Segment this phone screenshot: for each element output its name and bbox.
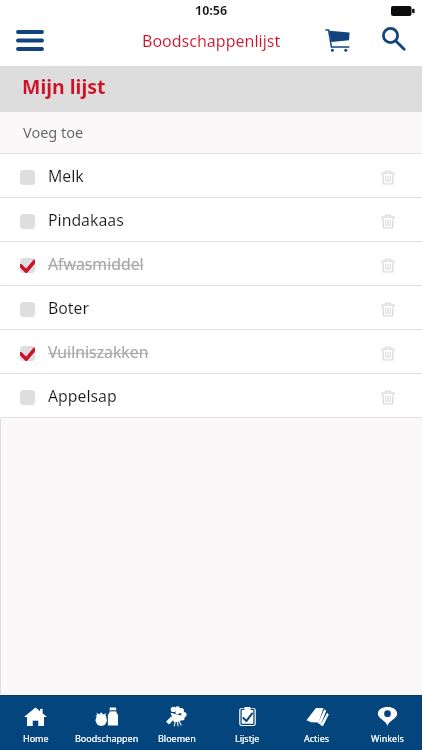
staticText: Boter xyxy=(48,297,89,319)
button[interactable]: Verwijder Boter xyxy=(368,288,408,328)
staticText: Home xyxy=(23,732,49,744)
staticText: Afwasmiddel xyxy=(48,253,144,275)
button[interactable]: Melk xyxy=(0,154,422,197)
button[interactable]: Vuilniszakken xyxy=(0,330,422,373)
staticText: Pindakaas xyxy=(48,209,124,231)
button[interactable]: Boter xyxy=(0,286,422,329)
button[interactable]: Voeg toe xyxy=(0,112,422,153)
button[interactable]: Verwijder Vuilniszakken xyxy=(368,332,408,372)
button[interactable]: Verwijder Melk xyxy=(368,156,408,196)
button[interactable]: Lijstje xyxy=(212,696,282,750)
staticText: 10:56 xyxy=(195,2,228,19)
button[interactable]: Menu xyxy=(7,21,52,66)
staticText: Bloemen xyxy=(158,732,196,744)
staticText: Lijstje xyxy=(235,732,260,744)
button[interactable]: Appelsap xyxy=(0,374,422,417)
button[interactable]: Verwijder Appelsap xyxy=(368,376,408,416)
staticText: Melk xyxy=(48,165,84,187)
staticText: Boodschappen xyxy=(75,732,139,744)
button[interactable]: Acties xyxy=(282,696,352,750)
staticText: Boodschappenlijst xyxy=(142,30,281,52)
staticText: Vuilniszakken xyxy=(48,341,149,363)
button[interactable]: Home xyxy=(0,696,71,750)
button[interactable]: Afwasmiddel xyxy=(0,242,422,285)
button[interactable]: Winkelwagen xyxy=(314,21,362,66)
staticText: Voeg toe xyxy=(23,122,84,142)
button[interactable]: Pindakaas xyxy=(0,198,422,241)
button[interactable]: Verwijder Afwasmiddel xyxy=(368,244,408,284)
staticText: Appelsap xyxy=(48,385,117,407)
button[interactable]: Boodschappen xyxy=(71,696,142,750)
staticText: Winkels xyxy=(371,732,404,744)
button[interactable]: Bloemen xyxy=(142,696,212,750)
button[interactable]: Zoeken xyxy=(372,21,414,66)
button[interactable]: Verwijder Pindakaas xyxy=(368,200,408,240)
staticText: Acties xyxy=(304,732,330,744)
button[interactable]: Mijn lijst xyxy=(0,66,422,112)
button[interactable]: Winkels xyxy=(352,696,422,750)
staticText: Mijn lijst xyxy=(22,73,106,100)
